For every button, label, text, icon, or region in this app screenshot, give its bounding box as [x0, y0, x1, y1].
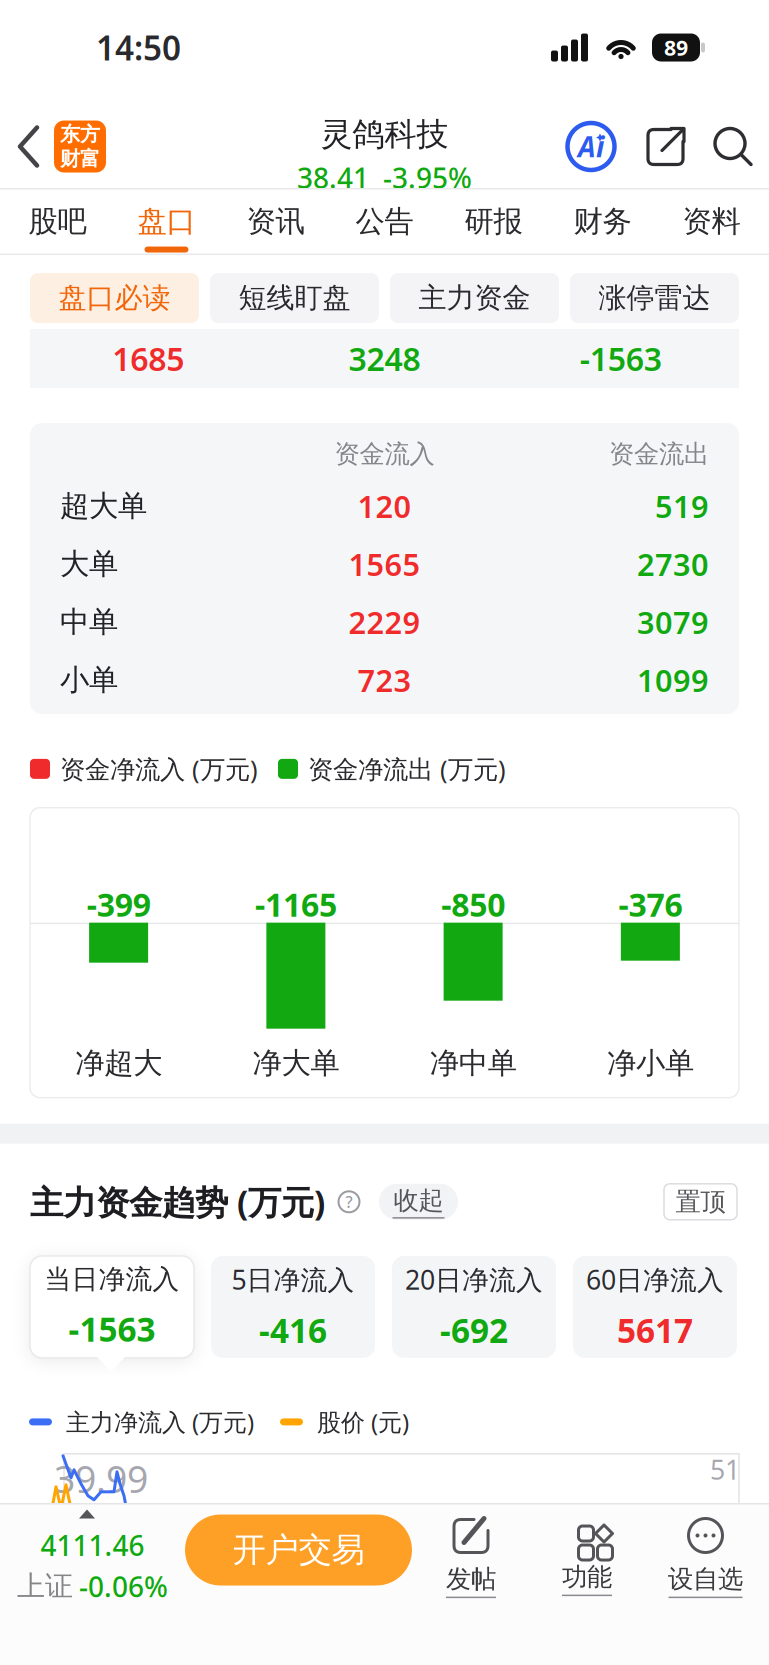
staticText: Ai — [578, 128, 604, 165]
button[interactable]: 帮助 — [325, 1190, 361, 1214]
staticText: 1565 — [348, 544, 420, 584]
staticText: 2730 — [637, 544, 709, 584]
staticText: 资料 — [682, 203, 740, 239]
staticText: 中单 — [60, 604, 118, 640]
button[interactable]: 盘口 — [136, 203, 197, 252]
staticText: 2229 — [348, 602, 420, 642]
button[interactable]: 发帖 — [446, 1504, 496, 1598]
button[interactable]: Ai — [565, 120, 617, 172]
staticText: 小单 — [60, 662, 118, 698]
staticText: ? — [345, 1191, 352, 1212]
staticText: 1099 — [637, 660, 709, 700]
button[interactable]: 收起 — [379, 1184, 458, 1220]
staticText: 1685 — [112, 337, 184, 380]
staticText: 38.41 -3.95% — [297, 159, 472, 196]
staticText: -850 — [441, 883, 505, 926]
staticText: -1563 — [580, 337, 662, 380]
staticText: 盘口必读 — [58, 281, 170, 315]
button[interactable]: 开户交易 — [185, 1514, 412, 1585]
staticText: 短线盯盘 — [238, 281, 350, 315]
staticText: 资金净流入 (万元) — [60, 752, 258, 786]
staticText: 收起 — [393, 1185, 443, 1216]
staticText: 51 — [710, 1452, 740, 1487]
staticText: -1563 — [68, 1307, 155, 1351]
button[interactable]: 主力资金 — [390, 273, 559, 323]
staticText: 主力资金趋势 (万元) — [30, 1180, 325, 1224]
button[interactable]: 60日净流入 — [573, 1256, 737, 1358]
staticText: 39.99 — [54, 1454, 148, 1503]
staticText: 股吧 — [28, 203, 86, 239]
staticText: 东方 — [60, 122, 100, 146]
staticText: 89 — [664, 33, 688, 62]
button[interactable]: 分享 — [617, 126, 687, 166]
staticText: 发帖 — [446, 1563, 496, 1595]
staticText: 资讯 — [246, 203, 304, 239]
staticText: 灵鸽科技 — [320, 115, 448, 154]
button[interactable]: 4111.46 — [0, 1504, 185, 1605]
button[interactable]: 5日净流入 — [211, 1256, 375, 1358]
button[interactable]: 股吧 — [27, 203, 88, 252]
button[interactable]: 资料 — [681, 203, 742, 252]
staticText: 财务 — [573, 203, 631, 239]
staticText: -376 — [618, 883, 682, 926]
staticText: 723 — [357, 660, 411, 700]
staticText: -399 — [87, 883, 151, 926]
button[interactable]: 功能 — [496, 1504, 612, 1596]
staticText: 5617 — [617, 1308, 693, 1352]
staticText: 盘口 — [137, 203, 195, 239]
staticText: 净超大 — [75, 1045, 162, 1081]
staticText: 上证 — [17, 1569, 73, 1603]
button[interactable]: 短线盯盘 — [210, 273, 379, 323]
button[interactable]: 置顶 — [664, 1184, 737, 1220]
staticText: 净小单 — [607, 1045, 694, 1081]
button[interactable]: 涨停雷达 — [570, 273, 739, 323]
staticText: 净大单 — [252, 1045, 339, 1081]
staticText: 20日净流入 — [405, 1262, 543, 1297]
staticText: -1165 — [255, 883, 337, 926]
staticText: 公告 — [355, 203, 413, 239]
staticText: 超大单 — [60, 488, 147, 524]
staticText: 519 — [655, 486, 709, 526]
button[interactable]: 当日净流入 — [30, 1256, 194, 1358]
button[interactable]: 返回 — [0, 125, 42, 167]
staticText: 资金流入 — [334, 438, 434, 470]
staticText: 研报 — [464, 203, 522, 239]
button[interactable]: 设自选 — [612, 1504, 769, 1598]
button[interactable]: 研报 — [463, 203, 524, 252]
button[interactable]: 资讯 — [245, 203, 306, 252]
button[interactable]: 东方财富 — [42, 120, 106, 172]
staticText: 5日净流入 — [231, 1262, 354, 1297]
staticText: 资金流出 — [609, 438, 709, 470]
staticText: 资金净流出 (万元) — [308, 752, 506, 786]
button[interactable]: 搜索 — [687, 126, 769, 166]
staticText: 3079 — [637, 602, 709, 642]
staticText: 股价 (元) — [317, 1406, 409, 1438]
staticText: 净中单 — [430, 1045, 517, 1081]
staticText: -0.06% — [79, 1568, 168, 1605]
button[interactable]: 20日净流入 — [392, 1256, 556, 1358]
staticText: 功能 — [562, 1561, 612, 1593]
staticText: 120 — [357, 486, 411, 526]
button[interactable]: 盘口必读 — [30, 273, 199, 323]
staticText: 3248 — [348, 337, 420, 380]
staticText: 大单 — [60, 546, 118, 582]
staticText: 4111.46 — [40, 1526, 144, 1564]
staticText: -692 — [440, 1308, 508, 1352]
button[interactable]: 公告 — [354, 203, 415, 252]
staticText: 涨停雷达 — [598, 281, 710, 315]
staticText: 置顶 — [675, 1186, 725, 1217]
staticText: 开户交易 — [232, 1529, 364, 1570]
staticText: 主力资金 — [418, 281, 530, 315]
button[interactable]: 财务 — [572, 203, 633, 252]
staticText: 14:50 — [96, 25, 181, 70]
staticText: 主力净流入 (万元) — [66, 1406, 254, 1438]
staticText: 当日净流入 — [44, 1263, 179, 1296]
staticText: 60日净流入 — [586, 1262, 724, 1297]
staticText: 财富 — [60, 146, 100, 171]
staticText: 设自选 — [668, 1563, 743, 1595]
staticText: -416 — [259, 1308, 327, 1352]
